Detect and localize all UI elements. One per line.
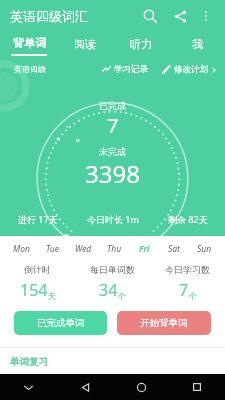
button[interactable]: 我 (169, 32, 225, 58)
button[interactable]: 阅读 (57, 32, 113, 58)
button[interactable]: Back (57, 374, 113, 400)
staticText: 英语四级 (14, 64, 46, 74)
staticText: 3398 (85, 157, 140, 190)
staticText: 每日单词数 (90, 264, 135, 275)
staticText: 听力 (130, 37, 152, 51)
button[interactable]: Share (167, 3, 193, 29)
staticText: 英语四级词汇 (10, 8, 88, 24)
button[interactable]: Search (137, 3, 163, 29)
staticText: 今日时长 1m (87, 213, 139, 225)
staticText: Sun (197, 243, 212, 255)
button[interactable]: Hide keyboard (0, 374, 57, 400)
staticText: 个 (189, 291, 197, 301)
staticText: 34 (99, 279, 118, 301)
staticText: 个 (118, 291, 126, 301)
staticText: 单词复习 (10, 356, 48, 368)
staticText: Fri (139, 243, 150, 255)
staticText: 修改计划 (174, 64, 208, 75)
staticText: 154 (20, 279, 48, 301)
staticText: 已完成单词 (37, 317, 85, 329)
staticText: 已完成 (99, 100, 126, 111)
staticText: Tue (46, 243, 59, 255)
button[interactable]: 学习记录 (102, 64, 148, 75)
staticText: Thu (107, 243, 122, 255)
button[interactable]: 单词复习 (10, 356, 225, 368)
button[interactable]: 听力 (113, 32, 169, 58)
staticText: 7 (107, 112, 119, 139)
staticText: 背单词 (13, 36, 46, 50)
button[interactable]: 已完成单词 (14, 311, 107, 335)
staticText: 天 (48, 291, 56, 301)
button[interactable]: More options (195, 5, 217, 27)
button[interactable]: Home (113, 374, 169, 400)
button[interactable]: Recent apps (169, 374, 225, 400)
staticText: 未完成 (99, 146, 126, 157)
staticText: Mon (13, 243, 30, 255)
button[interactable]: 背单词 (0, 32, 57, 58)
button[interactable]: 今日学习数 (150, 264, 225, 301)
button[interactable]: 每日单词数 (75, 264, 150, 301)
staticText: 今日学习数 (165, 264, 210, 275)
staticText: 进行 17天 (18, 213, 58, 225)
staticText: 我 (192, 37, 203, 51)
staticText: 7 (179, 279, 189, 301)
button[interactable]: 倒计时 (0, 264, 75, 301)
button[interactable]: 开始背单词 (117, 311, 211, 335)
staticText: 阅读 (74, 37, 96, 51)
button[interactable]: 修改计划 (162, 64, 217, 75)
staticText: 开始背单词 (140, 317, 188, 329)
staticText: Sat (168, 243, 180, 255)
staticText: 倒计时 (24, 264, 51, 275)
staticText: Wed (75, 243, 92, 255)
staticText: 学习记录 (114, 64, 148, 75)
staticText: 剩余 82天 (168, 213, 208, 225)
